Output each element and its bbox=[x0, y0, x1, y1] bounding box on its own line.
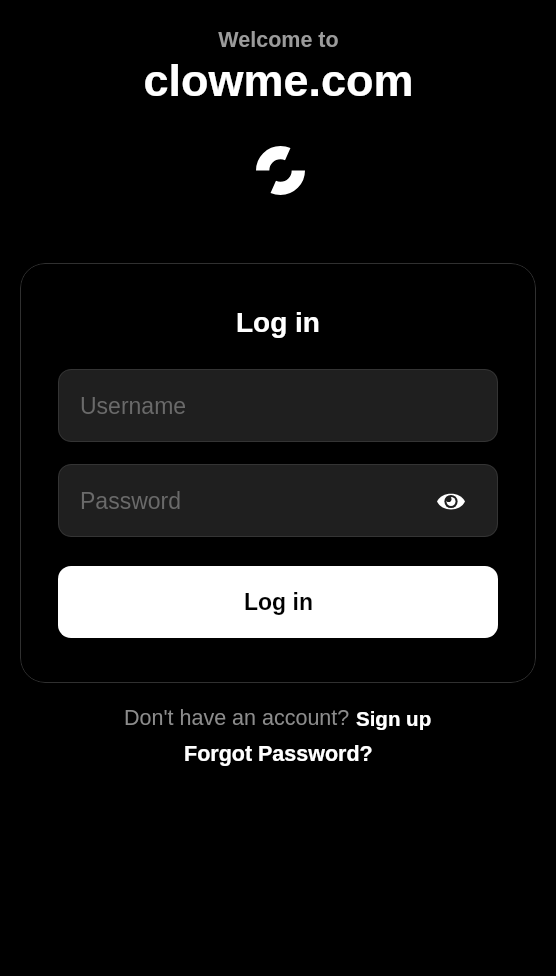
staticText: Log in bbox=[236, 307, 320, 338]
staticText: clowme.com bbox=[143, 55, 414, 105]
staticText: Don't have an account? bbox=[124, 706, 356, 730]
button[interactable]: Username bbox=[58, 369, 498, 442]
staticText: Forgot Password? bbox=[184, 742, 373, 766]
staticText: Welcome to bbox=[218, 28, 339, 52]
button[interactable]: Forgot Password? bbox=[184, 742, 373, 766]
staticText: Log in bbox=[244, 589, 313, 615]
staticText: Sign up bbox=[356, 707, 432, 730]
button[interactable]: Password bbox=[58, 464, 498, 537]
button[interactable]: Sign up bbox=[356, 707, 432, 730]
staticText: Password bbox=[80, 488, 181, 514]
staticText: Username bbox=[80, 393, 187, 419]
button[interactable]: Log in bbox=[58, 566, 498, 638]
button[interactable]: Show password bbox=[432, 482, 470, 520]
